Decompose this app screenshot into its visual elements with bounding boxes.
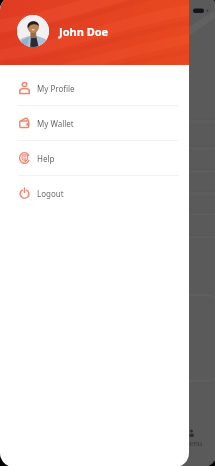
staticText: John Doe bbox=[59, 24, 109, 39]
button[interactable]: Logout bbox=[0, 176, 189, 210]
staticText: Logout bbox=[37, 188, 64, 199]
button[interactable]: My Wallet bbox=[0, 106, 189, 141]
staticText: My Profile bbox=[37, 83, 75, 94]
staticText: menu bbox=[183, 439, 203, 449]
button[interactable]: Help bbox=[0, 141, 189, 176]
staticText: My Wallet bbox=[37, 118, 74, 129]
button[interactable]: My Profile bbox=[0, 71, 189, 106]
staticText: Help bbox=[37, 153, 55, 164]
